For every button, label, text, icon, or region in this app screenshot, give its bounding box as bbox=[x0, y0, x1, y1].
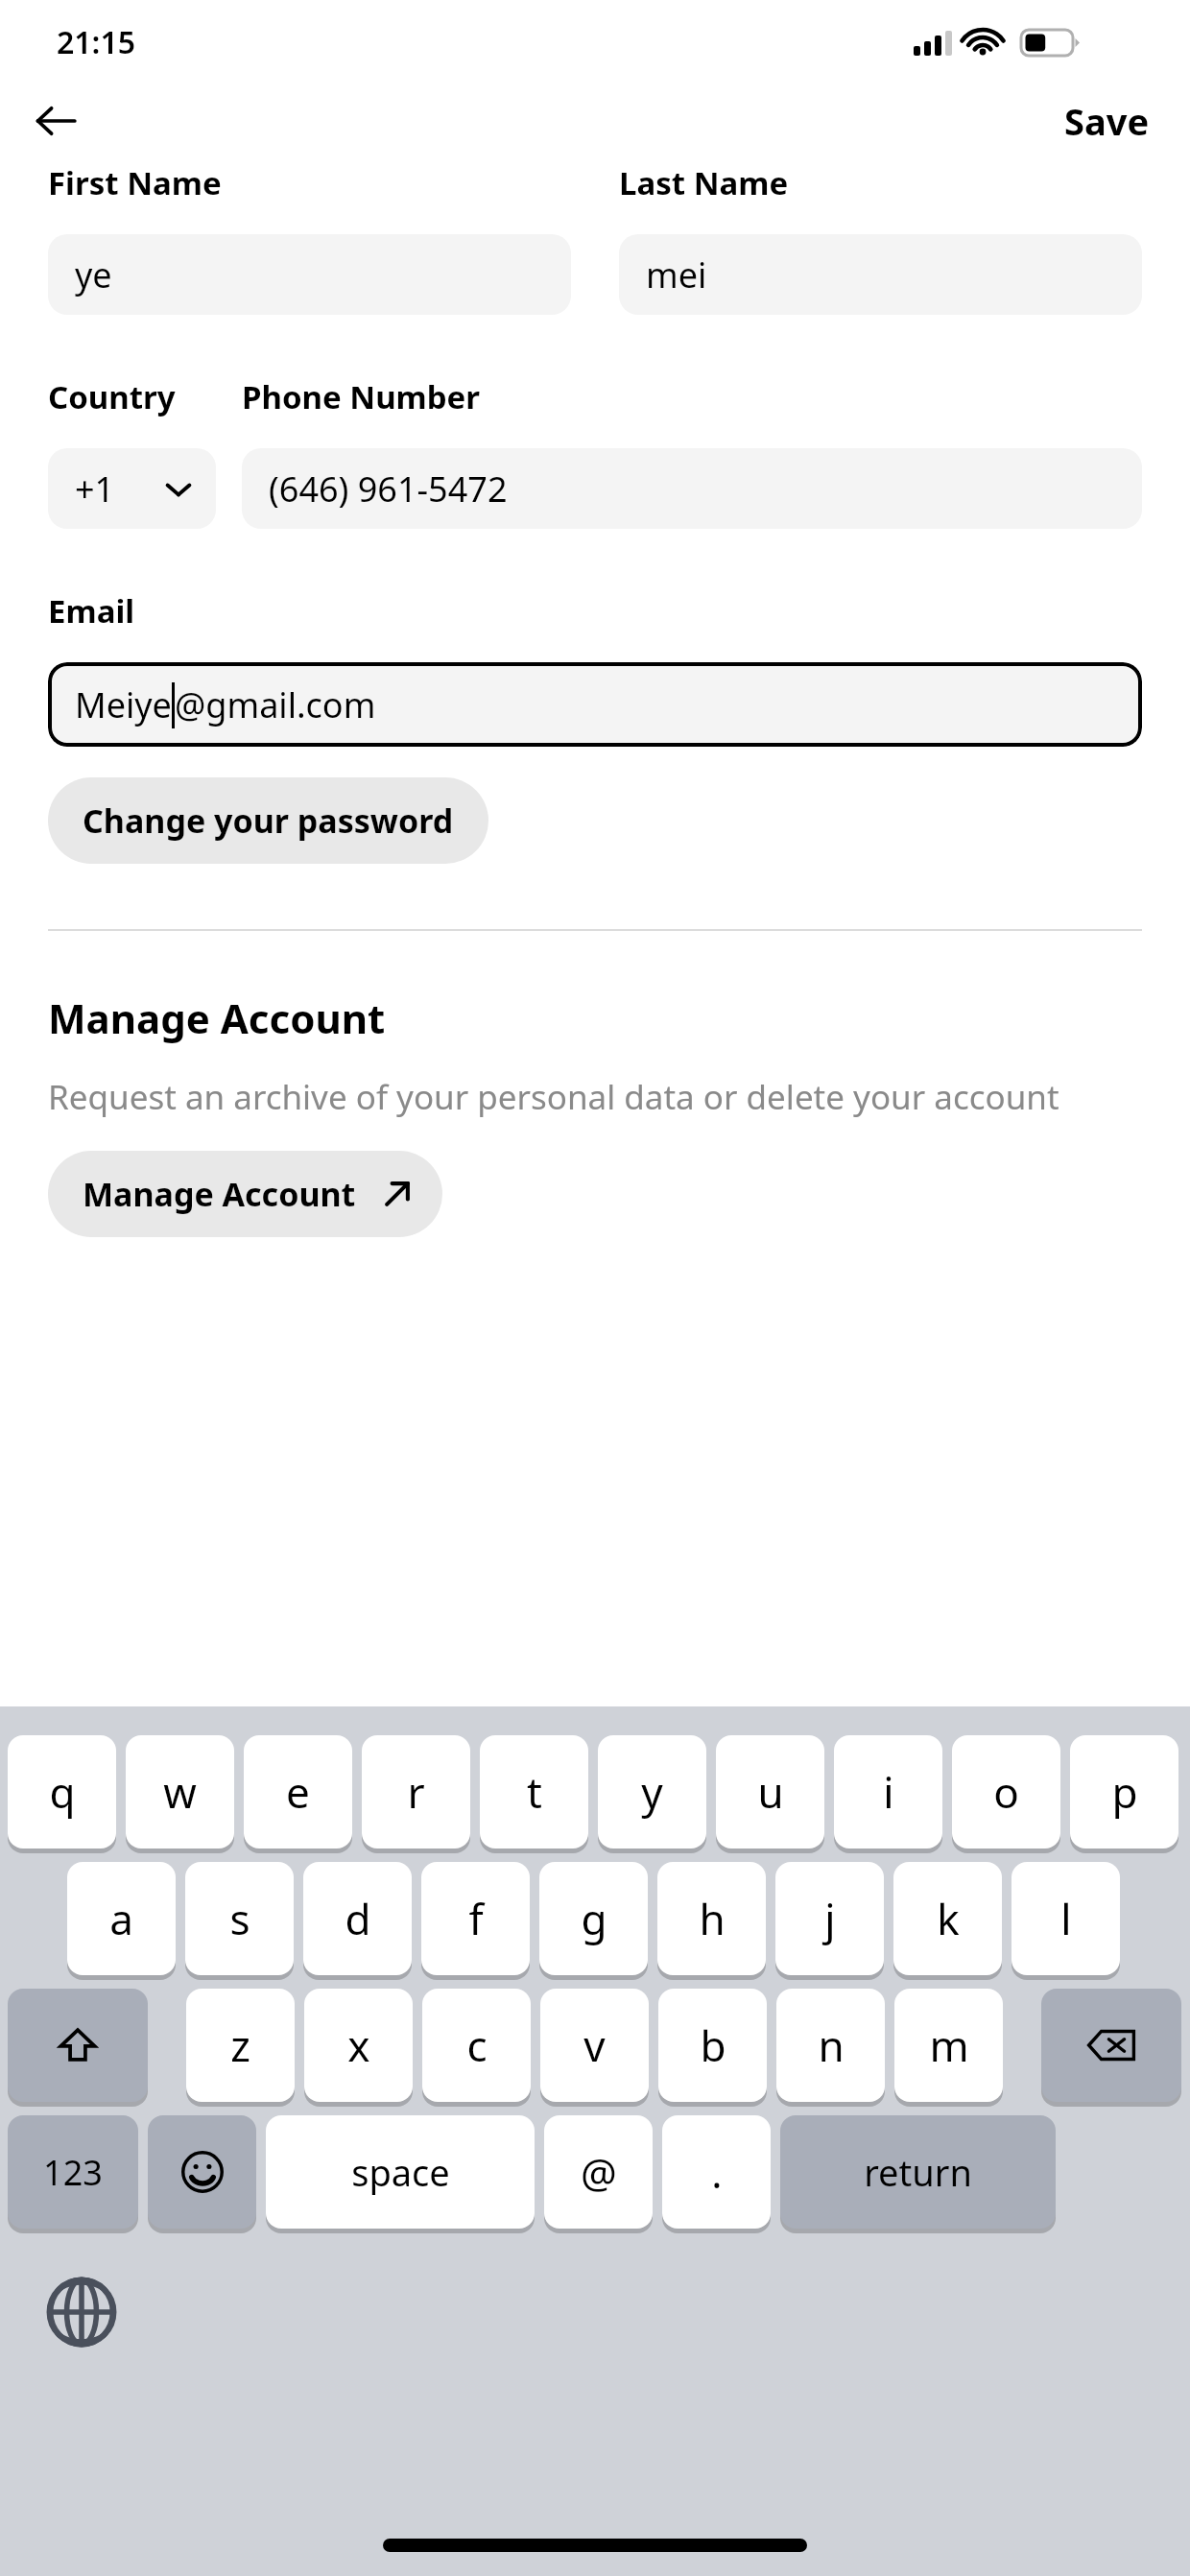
button[interactable]: b bbox=[658, 1989, 767, 2102]
button[interactable]: e bbox=[244, 1735, 352, 1849]
button[interactable]: f bbox=[421, 1862, 530, 1975]
staticText: s bbox=[229, 1890, 250, 1947]
staticText: e bbox=[286, 1763, 310, 1821]
button[interactable]: y bbox=[598, 1735, 706, 1849]
button[interactable]: @ bbox=[544, 2115, 653, 2229]
button[interactable]: Shift bbox=[8, 1989, 148, 2102]
staticText: ye bbox=[75, 251, 112, 298]
staticText: Email bbox=[48, 589, 135, 632]
button[interactable]: . bbox=[662, 2115, 771, 2229]
button[interactable]: z bbox=[186, 1989, 295, 2102]
button[interactable]: q bbox=[8, 1735, 116, 1849]
button[interactable]: return bbox=[780, 2115, 1056, 2229]
staticText: a bbox=[109, 1890, 133, 1947]
staticText: Phone Number bbox=[242, 375, 481, 418]
staticText: j bbox=[824, 1890, 836, 1947]
staticText: Manage Account bbox=[83, 1172, 356, 1216]
staticText: 123 bbox=[43, 2149, 103, 2196]
staticText: o bbox=[993, 1763, 1019, 1821]
button[interactable]: mei bbox=[619, 234, 1142, 315]
button[interactable]: Change keyboard language bbox=[40, 2271, 123, 2353]
staticText: Last Name bbox=[619, 161, 789, 204]
button[interactable]: (646) 961-5472 bbox=[242, 448, 1142, 529]
button[interactable]: Save bbox=[1057, 88, 1157, 154]
button[interactable]: Change your password bbox=[48, 777, 488, 864]
button[interactable]: 123 bbox=[8, 2115, 138, 2229]
button[interactable]: s bbox=[185, 1862, 294, 1975]
staticText: x bbox=[347, 2016, 370, 2074]
staticText: w bbox=[163, 1763, 197, 1821]
staticText: 21:15 bbox=[57, 21, 136, 63]
staticText: n bbox=[818, 2016, 845, 2074]
button[interactable]: Back bbox=[25, 90, 86, 152]
staticText: Change your password bbox=[83, 799, 454, 843]
staticText: q bbox=[49, 1763, 76, 1821]
button[interactable]: c bbox=[422, 1989, 531, 2102]
button[interactable]: v bbox=[540, 1989, 649, 2102]
button[interactable]: Meiye bbox=[48, 662, 1142, 747]
staticText: Country bbox=[48, 375, 176, 418]
button[interactable]: t bbox=[480, 1735, 588, 1849]
staticText: . bbox=[711, 2145, 723, 2200]
button[interactable]: i bbox=[834, 1735, 942, 1849]
staticText: First Name bbox=[48, 161, 222, 204]
button[interactable]: +1 bbox=[48, 448, 216, 529]
staticText: l bbox=[1060, 1890, 1072, 1947]
button[interactable]: Manage Account bbox=[48, 1151, 442, 1237]
button[interactable]: g bbox=[539, 1862, 648, 1975]
staticText: t bbox=[527, 1763, 542, 1821]
staticText: y bbox=[641, 1763, 663, 1821]
staticText: d bbox=[345, 1890, 371, 1947]
staticText: (646) 961-5472 bbox=[269, 465, 508, 513]
button[interactable]: h bbox=[657, 1862, 766, 1975]
staticText: Request an archive of your personal data… bbox=[48, 1074, 1059, 1120]
button[interactable]: n bbox=[776, 1989, 885, 2102]
button[interactable]: d bbox=[303, 1862, 412, 1975]
button[interactable]: o bbox=[952, 1735, 1060, 1849]
button[interactable]: Backspace bbox=[1041, 1989, 1181, 2102]
button[interactable]: p bbox=[1070, 1735, 1178, 1849]
button[interactable]: r bbox=[362, 1735, 470, 1849]
button[interactable]: k bbox=[893, 1862, 1002, 1975]
staticText: u bbox=[757, 1763, 784, 1821]
button[interactable]: a bbox=[67, 1862, 176, 1975]
staticText: c bbox=[466, 2016, 488, 2074]
button[interactable]: m bbox=[894, 1989, 1003, 2102]
staticText: v bbox=[583, 2016, 606, 2074]
button[interactable]: w bbox=[126, 1735, 234, 1849]
button[interactable]: u bbox=[716, 1735, 824, 1849]
button[interactable]: Emoji bbox=[148, 2115, 256, 2229]
staticText: Meiye bbox=[75, 681, 172, 728]
staticText: mei bbox=[646, 251, 707, 298]
staticText: k bbox=[937, 1890, 960, 1947]
staticText: +1 bbox=[75, 465, 115, 513]
button[interactable]: j bbox=[775, 1862, 884, 1975]
staticText: Manage Account bbox=[48, 990, 386, 1045]
button[interactable]: space bbox=[266, 2115, 535, 2229]
staticText: space bbox=[351, 2147, 450, 2197]
staticText: i bbox=[883, 1763, 894, 1821]
staticText: Save bbox=[1064, 96, 1150, 146]
staticText: h bbox=[699, 1890, 726, 1947]
staticText: p bbox=[1111, 1763, 1138, 1821]
button[interactable]: l bbox=[1011, 1862, 1120, 1975]
staticText: return bbox=[864, 2147, 972, 2197]
button[interactable]: x bbox=[304, 1989, 413, 2102]
staticText: b bbox=[700, 2016, 726, 2074]
staticText: g bbox=[581, 1890, 607, 1947]
staticText: z bbox=[230, 2016, 250, 2074]
staticText: @ bbox=[581, 2145, 617, 2200]
staticText: f bbox=[468, 1890, 484, 1947]
staticText: m bbox=[929, 2016, 969, 2074]
staticText: @gmail.com bbox=[175, 681, 376, 728]
button[interactable]: ye bbox=[48, 234, 571, 315]
staticText: r bbox=[407, 1763, 425, 1821]
